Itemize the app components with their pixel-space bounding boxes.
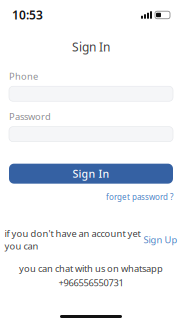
button[interactable]: forget password ? [106, 192, 173, 202]
staticText: Sign Up [143, 233, 177, 246]
staticText: +966556550731 [58, 276, 123, 289]
staticText: Password [9, 110, 51, 123]
staticText: Phone [9, 70, 38, 82]
button[interactable]: Sign In [9, 164, 173, 184]
button[interactable]: Sign Up [143, 233, 177, 246]
staticText: Sign In [72, 167, 109, 181]
staticText: 10:53 [12, 7, 43, 23]
staticText: if you don't have an account yet you can [4, 227, 140, 252]
staticText: forget password ? [106, 192, 173, 202]
staticText: you can chat with us on whatsapp [19, 262, 163, 274]
staticText: Sign In [72, 39, 110, 55]
